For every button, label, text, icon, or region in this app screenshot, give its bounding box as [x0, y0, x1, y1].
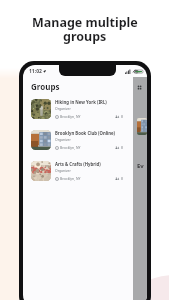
staticText: Arts & Crafts (Hybrid): [55, 161, 101, 167]
staticText: 8: [121, 145, 123, 150]
staticText: Organizer: [55, 106, 71, 111]
staticText: 8: [121, 176, 123, 181]
staticText: Ev: [137, 162, 144, 170]
staticText: Hiking in New York (IRL): [55, 99, 107, 105]
staticText: Brooklyn Book Club (Online): [55, 130, 116, 136]
staticText: groups: [63, 28, 107, 45]
staticText: 11:02: [29, 68, 42, 75]
staticText: Groups: [31, 81, 60, 92]
button[interactable]: Arts & Crafts (Hybrid): [23, 155, 133, 186]
button[interactable]: Brooklyn Book Club (Online): [23, 124, 133, 155]
staticText: Brooklyn, NY: [60, 114, 81, 119]
staticText: Brooklyn, NY: [60, 176, 81, 181]
staticText: Organizer: [55, 168, 71, 173]
staticText: 8: [121, 114, 123, 119]
staticText: Manage multiple: [32, 14, 138, 31]
button[interactable]: Hiking in New York (IRL): [23, 93, 133, 124]
staticText: Brooklyn, NY: [60, 145, 81, 150]
staticText: Organizer: [55, 137, 71, 142]
